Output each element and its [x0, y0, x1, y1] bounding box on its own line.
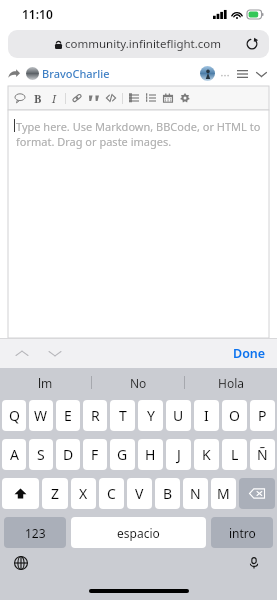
- button[interactable]: Previous field: [11, 342, 33, 364]
- button[interactable]: S: [29, 439, 53, 470]
- staticText: I: [52, 91, 57, 106]
- button[interactable]: L: [222, 439, 247, 470]
- staticText: Hola: [218, 375, 244, 391]
- button[interactable]: Reload: [243, 35, 261, 53]
- button[interactable]: I: [194, 400, 219, 431]
- staticText: T: [119, 406, 127, 425]
- button[interactable]: Next field: [44, 342, 66, 364]
- staticText: V: [135, 484, 144, 503]
- staticText: lm: [38, 375, 53, 391]
- button[interactable]: Ñ: [250, 439, 275, 470]
- button[interactable]: V: [127, 478, 152, 509]
- button[interactable]: BravoCharlie: [8, 66, 110, 81]
- button[interactable]: Menu: [235, 67, 249, 81]
- staticText: espacio: [117, 525, 160, 541]
- staticText: Ñ: [257, 445, 268, 464]
- button[interactable]: C: [99, 478, 124, 509]
- staticText: Z: [51, 484, 60, 503]
- staticText: H: [145, 445, 156, 464]
- button[interactable]: K: [194, 439, 219, 470]
- staticText: J: [177, 445, 181, 464]
- button[interactable]: Backspace: [239, 478, 275, 509]
- button[interactable]: F: [83, 439, 107, 470]
- button[interactable]: Link: [71, 92, 83, 104]
- button[interactable]: Italic: [49, 90, 60, 106]
- staticText: C: [107, 484, 116, 503]
- button[interactable]: W: [29, 400, 53, 431]
- staticText: S: [37, 445, 45, 464]
- button[interactable]: D: [56, 439, 80, 470]
- button[interactable]: Done: [233, 345, 266, 362]
- button[interactable]: Shift: [2, 478, 39, 509]
- button[interactable]: Y: [138, 400, 163, 431]
- button[interactable]: G: [110, 439, 135, 470]
- button[interactable]: X: [71, 478, 96, 509]
- staticText: community.infiniteflight.com: [65, 36, 222, 52]
- staticText: F: [91, 445, 99, 464]
- staticText: D: [63, 445, 74, 464]
- button[interactable]: T: [110, 400, 135, 431]
- button[interactable]: J: [166, 439, 191, 470]
- button[interactable]: community.infiniteflight.com: [8, 30, 269, 58]
- staticText: 11:10: [22, 6, 53, 22]
- staticText: L: [231, 445, 239, 464]
- button[interactable]: Calendar: [162, 92, 174, 104]
- button[interactable]: P: [250, 400, 275, 431]
- button[interactable]: Numbered list: [145, 92, 157, 104]
- button[interactable]: Code: [105, 92, 117, 104]
- button[interactable]: Z: [42, 478, 68, 509]
- staticText: Type here. Use Markdown, BBCode, or HTML…: [16, 119, 261, 149]
- staticText: Done: [233, 345, 266, 362]
- staticText: U: [173, 406, 184, 425]
- staticText: N: [190, 484, 201, 503]
- button[interactable]: Type here. Use Markdown, BBCode, or HTML…: [8, 110, 269, 338]
- button[interactable]: B: [155, 478, 180, 509]
- button[interactable]: Emoji: [14, 92, 26, 104]
- button[interactable]: Q: [2, 400, 26, 431]
- button[interactable]: intro: [211, 517, 273, 548]
- button[interactable]: A: [2, 439, 26, 470]
- button[interactable]: More options: [220, 69, 230, 79]
- button[interactable]: Collapse: [254, 67, 268, 81]
- button[interactable]: E: [56, 400, 80, 431]
- button[interactable]: lm: [0, 368, 91, 397]
- staticText: M: [217, 484, 230, 503]
- staticText: B: [163, 484, 173, 503]
- button[interactable]: No: [92, 368, 184, 397]
- button[interactable]: R: [83, 400, 107, 431]
- button[interactable]: Settings: [179, 92, 191, 104]
- staticText: I: [204, 406, 209, 425]
- staticText: W: [34, 406, 48, 425]
- button[interactable]: M: [211, 478, 236, 509]
- staticText: P: [258, 406, 267, 425]
- button[interactable]: U: [166, 400, 191, 431]
- staticText: A: [10, 445, 19, 464]
- staticText: B: [34, 91, 42, 106]
- button[interactable]: N: [183, 478, 208, 509]
- button[interactable]: Dictation: [244, 553, 264, 573]
- button[interactable]: Avatar: [200, 66, 215, 81]
- button[interactable]: Hola: [185, 368, 277, 397]
- staticText: E: [64, 406, 72, 425]
- staticText: G: [117, 445, 128, 464]
- staticText: intro: [229, 525, 256, 541]
- staticText: X: [79, 484, 88, 503]
- staticText: BravoCharlie: [42, 66, 110, 81]
- button[interactable]: Bulleted list: [128, 92, 140, 104]
- button[interactable]: Quote: [88, 92, 100, 104]
- button[interactable]: espacio: [71, 517, 206, 548]
- staticText: K: [202, 445, 211, 464]
- staticText: Y: [147, 406, 155, 425]
- button[interactable]: 123: [4, 517, 66, 548]
- button[interactable]: Change keyboard language: [11, 553, 31, 573]
- button[interactable]: Bold: [32, 90, 43, 106]
- staticText: R: [91, 406, 100, 425]
- button[interactable]: O: [222, 400, 247, 431]
- staticText: No: [130, 375, 147, 391]
- button[interactable]: H: [138, 439, 163, 470]
- staticText: 123: [25, 525, 46, 541]
- staticText: Q: [9, 406, 20, 425]
- staticText: O: [229, 406, 240, 425]
